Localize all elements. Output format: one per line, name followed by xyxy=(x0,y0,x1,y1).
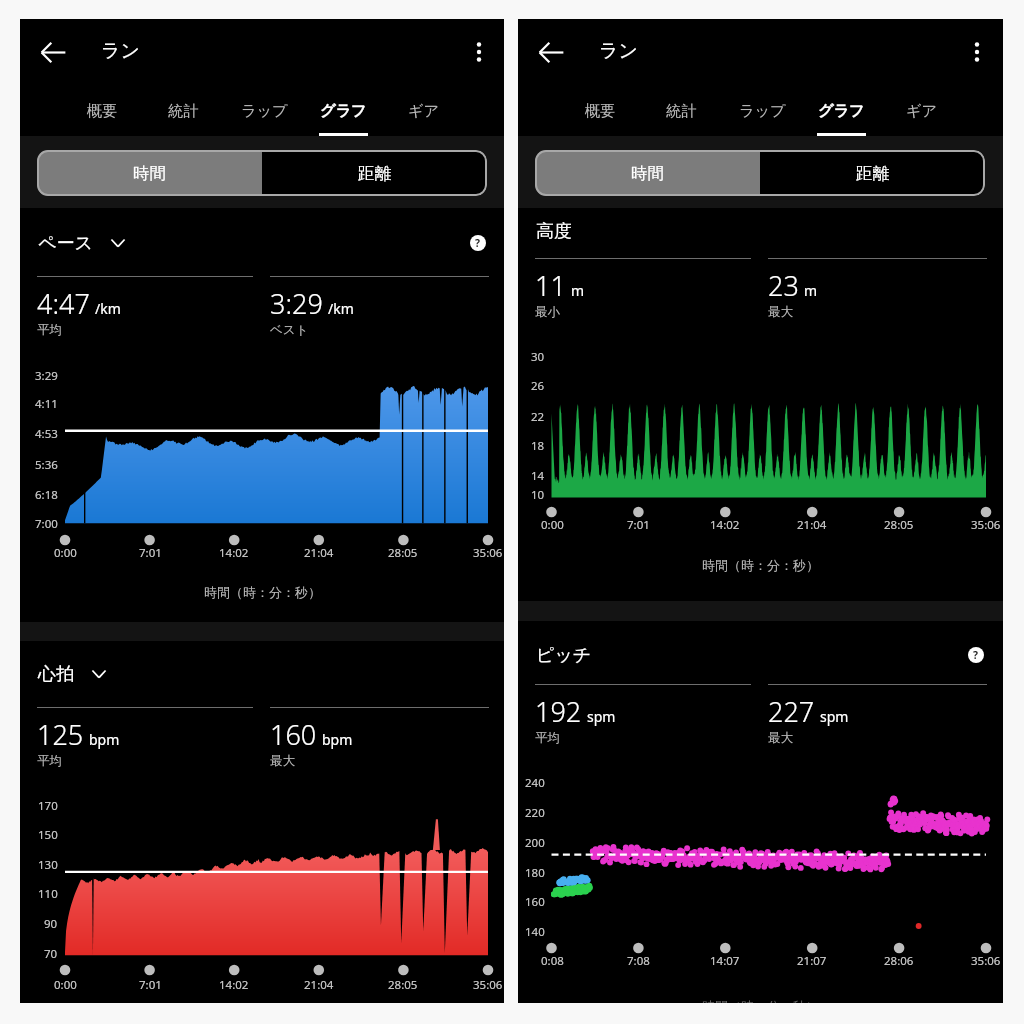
staticText: 10 xyxy=(531,487,545,503)
button[interactable]: 概要 xyxy=(64,91,140,135)
button[interactable]: グラフ xyxy=(803,91,879,135)
staticText: /km xyxy=(95,299,121,318)
button[interactable]: ギア xyxy=(386,91,462,135)
staticText: 時間 xyxy=(631,163,664,184)
staticText: 時間（時：分：秒） xyxy=(204,584,321,600)
button[interactable]: ギア xyxy=(884,91,960,135)
staticText: 30 xyxy=(531,349,545,365)
staticText: 22 xyxy=(531,409,545,425)
staticText: m xyxy=(804,281,818,300)
staticText: bpm xyxy=(89,730,120,749)
staticText: 7:01 xyxy=(627,517,650,533)
staticText: 192 xyxy=(535,693,582,730)
staticText: spm xyxy=(587,707,616,726)
staticText: ピッチ xyxy=(536,644,592,667)
button[interactable]: 概要 xyxy=(562,91,638,135)
staticText: 28:05 xyxy=(388,977,418,993)
staticText: 距離 xyxy=(358,163,391,184)
staticText: spm xyxy=(820,707,849,726)
staticText: 11 xyxy=(535,267,566,304)
button[interactable]: 時間 xyxy=(37,150,262,196)
staticText: 心拍 xyxy=(38,663,74,686)
staticText: ラップ xyxy=(739,101,786,120)
staticText: 150 xyxy=(38,827,58,843)
button[interactable]: 距離 xyxy=(262,150,487,196)
staticText: 5:36 xyxy=(35,457,58,473)
staticText: 3:29 xyxy=(270,285,323,322)
staticText: 160 xyxy=(525,894,545,910)
staticText: ギア xyxy=(906,101,938,120)
button[interactable]: Help xyxy=(463,228,493,258)
staticText: 21:04 xyxy=(797,517,827,533)
staticText: 0:08 xyxy=(541,953,564,969)
staticText: 160 xyxy=(270,716,317,753)
button[interactable]: ラップ xyxy=(724,91,800,135)
button[interactable]: Back xyxy=(30,29,76,75)
staticText: 最大 xyxy=(768,730,793,746)
staticText: ? xyxy=(973,648,979,662)
staticText: 21:04 xyxy=(304,977,334,993)
staticText: 平均 xyxy=(535,730,560,746)
staticText: /km xyxy=(328,299,354,318)
staticText: 7:00 xyxy=(35,516,58,532)
staticText: 7:01 xyxy=(139,545,162,561)
staticText: 227 xyxy=(768,693,815,730)
staticText: 130 xyxy=(38,857,58,873)
staticText: 26 xyxy=(531,378,545,394)
staticText: 14 xyxy=(531,468,545,484)
staticText: 0:00 xyxy=(54,545,77,561)
staticText: 最大 xyxy=(270,753,295,769)
staticText: 21:07 xyxy=(797,953,827,969)
staticText: 14:02 xyxy=(710,517,740,533)
staticText: 3:29 xyxy=(35,368,58,384)
staticText: 7:08 xyxy=(627,953,650,969)
staticText: 4:47 xyxy=(37,285,90,322)
staticText: 0:00 xyxy=(541,517,564,533)
staticText: 35:06 xyxy=(473,977,503,993)
staticText: 平均 xyxy=(37,322,62,338)
button[interactable]: グラフ xyxy=(305,91,381,135)
staticText: グラフ xyxy=(320,101,367,120)
button[interactable]: 距離 xyxy=(760,150,985,196)
staticText: 概要 xyxy=(87,101,118,120)
staticText: ペース xyxy=(38,232,93,255)
staticText: 28:05 xyxy=(388,545,418,561)
button[interactable]: ピッチ xyxy=(536,644,592,667)
button[interactable]: Help xyxy=(961,640,991,670)
staticText: bpm xyxy=(322,730,353,749)
staticText: 平均 xyxy=(37,753,62,769)
staticText: 4:11 xyxy=(35,396,58,412)
staticText: m xyxy=(571,281,585,300)
staticText: ギア xyxy=(408,101,440,120)
button[interactable]: Back xyxy=(528,29,574,75)
staticText: 時間 xyxy=(133,163,166,184)
staticText: 最小 xyxy=(535,304,560,320)
staticText: 時間（時：分：秒） xyxy=(702,557,819,573)
staticText: 18 xyxy=(531,438,545,454)
button[interactable]: 高度 xyxy=(536,220,572,243)
staticText: 170 xyxy=(38,798,58,814)
staticText: グラフ xyxy=(818,101,865,120)
staticText: 高度 xyxy=(536,220,572,243)
staticText: 125 xyxy=(37,716,84,753)
button[interactable]: ラップ xyxy=(226,91,302,135)
staticText: 時間（時：分：秒） xyxy=(702,998,819,1003)
button[interactable]: 心拍 xyxy=(38,663,106,686)
button[interactable]: 時間 xyxy=(535,150,760,196)
button[interactable]: ペース xyxy=(38,232,125,255)
staticText: 23 xyxy=(768,267,799,304)
staticText: 14:02 xyxy=(219,977,249,993)
staticText: 28:05 xyxy=(884,517,914,533)
staticText: 240 xyxy=(525,775,545,791)
button[interactable]: 統計 xyxy=(145,91,221,135)
staticText: 0:00 xyxy=(54,977,77,993)
staticText: 200 xyxy=(525,835,545,851)
staticText: 4:53 xyxy=(35,426,58,442)
staticText: ベスト xyxy=(270,322,309,338)
button[interactable]: More options xyxy=(954,29,1000,75)
button[interactable]: 統計 xyxy=(643,91,719,135)
staticText: ラン xyxy=(599,39,638,63)
button[interactable]: More options xyxy=(456,29,502,75)
staticText: 180 xyxy=(525,865,545,881)
staticText: 統計 xyxy=(666,101,697,120)
